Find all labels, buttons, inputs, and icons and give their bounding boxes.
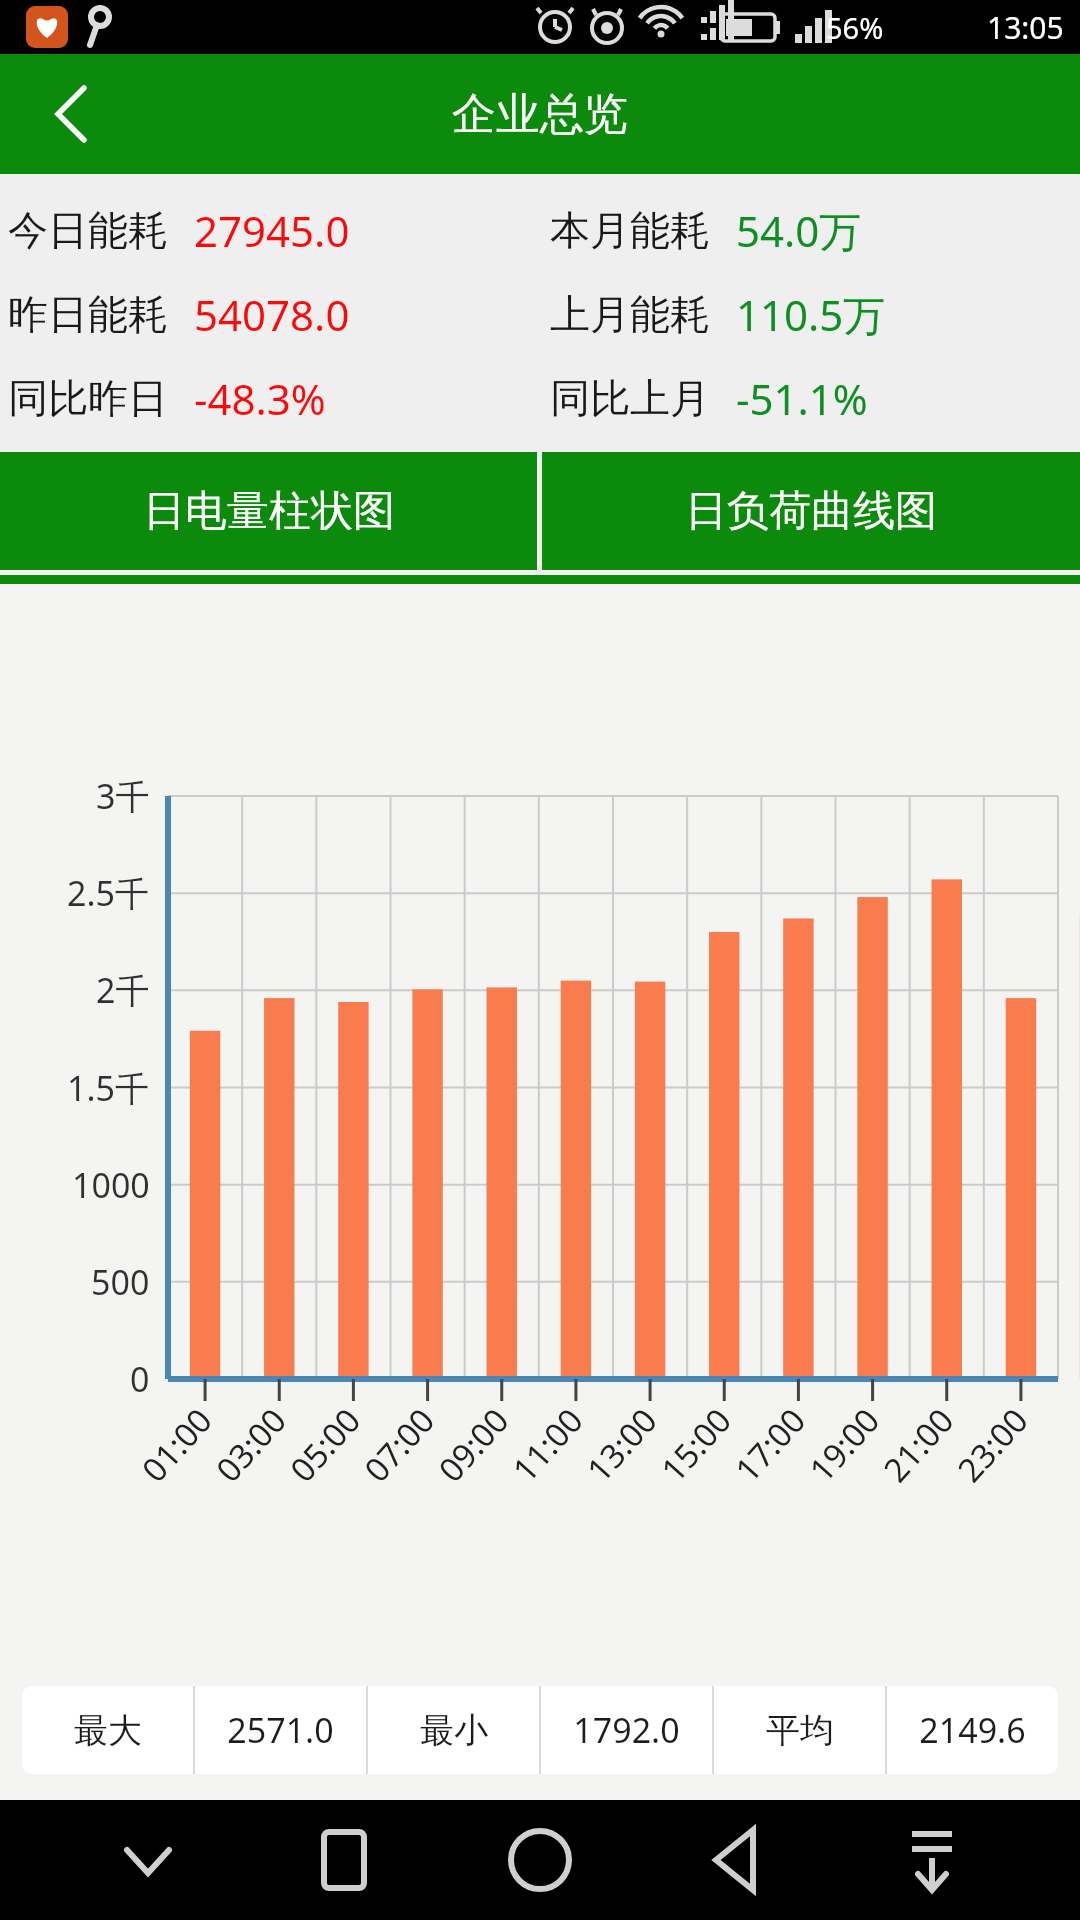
staticText: 56% bbox=[826, 8, 884, 47]
staticText: -48.3% bbox=[194, 370, 326, 427]
staticText: 昨日能耗 bbox=[8, 289, 168, 339]
button[interactable]: 最大 bbox=[22, 1686, 1058, 1774]
staticText: 上月能耗 bbox=[550, 289, 710, 339]
staticText: 2149.6 bbox=[919, 1707, 1026, 1753]
button[interactable]: 上月能耗 bbox=[540, 272, 1080, 356]
staticText: 27945.0 bbox=[194, 202, 350, 259]
staticText: 1792.0 bbox=[573, 1707, 680, 1753]
staticText: 110.5万 bbox=[736, 286, 886, 343]
staticText: 本月能耗 bbox=[550, 205, 710, 255]
button[interactable]: 昨日能耗 bbox=[0, 272, 540, 356]
button[interactable]: 日负荷曲线图 bbox=[542, 452, 1080, 570]
button[interactable]: Recents bbox=[296, 1812, 392, 1908]
staticText: 同比昨日 bbox=[8, 373, 168, 423]
staticText: 最小 bbox=[420, 1709, 488, 1752]
button[interactable]: 同比昨日 bbox=[0, 356, 540, 440]
staticText: 54078.0 bbox=[194, 286, 350, 343]
staticText: 今日能耗 bbox=[8, 205, 168, 255]
staticText: 日负荷曲线图 bbox=[685, 485, 937, 538]
button[interactable]: Hide keyboard bbox=[100, 1812, 196, 1908]
button[interactable]: 今日能耗 bbox=[0, 188, 540, 272]
button[interactable]: Back bbox=[688, 1812, 784, 1908]
button[interactable]: 同比上月 bbox=[540, 356, 1080, 440]
button[interactable]: Back bbox=[34, 78, 106, 150]
staticText: 2571.0 bbox=[227, 1707, 334, 1753]
button[interactable]: Collapse bbox=[884, 1812, 980, 1908]
staticText: 13:05 bbox=[987, 7, 1064, 48]
button[interactable]: 本月能耗 bbox=[540, 188, 1080, 272]
staticText: 企业总览 bbox=[452, 87, 628, 142]
button[interactable]: Home bbox=[492, 1812, 588, 1908]
staticText: 日电量柱状图 bbox=[143, 485, 395, 538]
staticText: -51.1% bbox=[736, 370, 868, 427]
staticText: 同比上月 bbox=[550, 373, 710, 423]
staticText: 54.0万 bbox=[736, 202, 862, 259]
staticText: 最大 bbox=[74, 1709, 142, 1752]
staticText: 平均 bbox=[766, 1709, 834, 1752]
button[interactable]: 日电量柱状图 bbox=[0, 452, 537, 570]
